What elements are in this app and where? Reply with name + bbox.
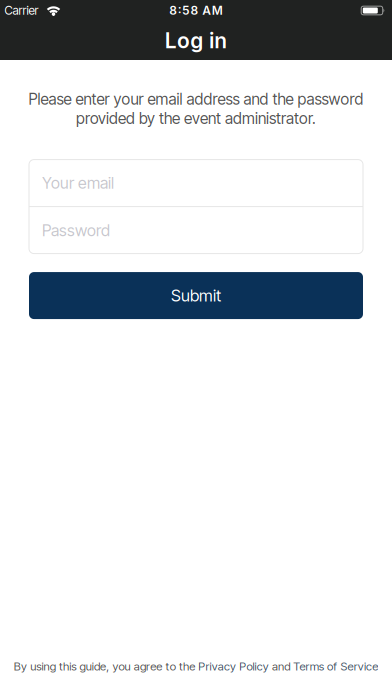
staticText: 8:58 AM	[169, 3, 223, 18]
staticText: Terms of Service	[293, 659, 378, 673]
staticText: Please enter your email address and the …	[28, 90, 363, 108]
staticText: By using this guide, you agree to the	[14, 659, 198, 673]
button[interactable]: Submit	[29, 272, 363, 319]
button[interactable]: Terms of Service	[293, 659, 378, 673]
button[interactable]: Privacy Policy	[198, 659, 269, 673]
staticText: Submit	[171, 286, 221, 305]
staticText: provided by the event administrator.	[76, 109, 316, 128]
staticText: Carrier	[4, 3, 38, 18]
staticText: Password	[42, 221, 110, 240]
staticText: and	[269, 659, 293, 673]
staticText: Log in	[165, 28, 227, 53]
button[interactable]: Your email	[29, 160, 363, 206]
staticText: Your email	[42, 173, 114, 192]
button[interactable]: Password	[29, 207, 363, 254]
staticText: Privacy Policy	[198, 659, 269, 673]
